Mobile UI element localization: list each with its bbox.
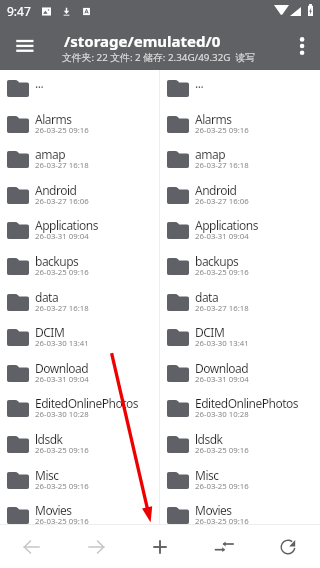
staticText: data	[35, 289, 59, 305]
button[interactable]: amap	[160, 141, 320, 177]
button[interactable]: Misc	[160, 462, 320, 498]
button[interactable]: amap	[0, 141, 159, 177]
button[interactable]: Download	[160, 355, 320, 391]
staticText: 26-03-31 09:04	[35, 231, 89, 242]
button[interactable]: DCIM	[0, 319, 159, 355]
staticText: 26-03-31 09:04	[195, 231, 249, 242]
staticText: Android	[35, 182, 77, 198]
staticText: ldsdk	[195, 431, 223, 447]
button[interactable]: More options	[286, 28, 320, 64]
staticText: 文件夹: 22 文件: 2 储存: 2.34G/49.32G 读写	[62, 51, 256, 64]
staticText: ...	[35, 75, 44, 91]
staticText: backups	[35, 253, 79, 269]
staticText: 26-03-30 13:41	[35, 338, 89, 349]
staticText: EditedOnlinePhotos	[195, 395, 299, 411]
staticText: /storage/emulated/0	[64, 31, 221, 51]
staticText: 26-03-30 10:28	[195, 409, 249, 420]
staticText: amap	[35, 146, 66, 162]
button[interactable]: Android	[160, 177, 320, 213]
button[interactable]: ...	[0, 70, 159, 106]
button[interactable]: Movies	[0, 497, 159, 524]
staticText: 26-03-25 09:16	[195, 445, 249, 456]
button[interactable]: Applications	[0, 212, 159, 248]
button[interactable]: ldsdk	[160, 426, 320, 462]
staticText: 26-03-25 09:16	[35, 125, 89, 136]
button[interactable]: data	[0, 284, 159, 320]
staticText: 26-03-25 09:16	[35, 481, 89, 492]
button[interactable]: Refresh	[264, 525, 312, 568]
staticText: 26-03-25 09:16	[35, 516, 89, 524]
staticText: Download	[195, 360, 249, 376]
staticText: Applications	[195, 217, 258, 233]
button[interactable]: Forward	[72, 525, 120, 568]
staticText: backups	[195, 253, 239, 269]
staticText: DCIM	[195, 324, 225, 340]
button[interactable]: EditedOnlinePhotos	[0, 390, 159, 426]
button[interactable]: Menu	[8, 28, 42, 64]
button[interactable]: Move	[200, 525, 248, 568]
staticText: Alarms	[195, 111, 232, 127]
staticText: Download	[35, 360, 89, 376]
button[interactable]: Android	[0, 177, 159, 213]
staticText: Movies	[195, 502, 232, 518]
button[interactable]: Download	[0, 355, 159, 391]
button[interactable]: Misc	[0, 462, 159, 498]
staticText: 26-03-27 16:06	[35, 196, 89, 207]
staticText: 26-03-30 10:28	[35, 409, 89, 420]
staticText: 26-03-25 09:16	[195, 267, 249, 278]
staticText: data	[195, 289, 219, 305]
staticText: 26-03-27 16:06	[195, 196, 249, 207]
button[interactable]: Movies	[160, 497, 320, 524]
staticText: Applications	[35, 217, 98, 233]
staticText: 26-03-27 16:18	[195, 160, 249, 171]
staticText: 26-03-27 16:18	[35, 303, 89, 314]
button[interactable]: backups	[160, 248, 320, 284]
button[interactable]: ldsdk	[0, 426, 159, 462]
staticText: 26-03-25 09:16	[195, 481, 249, 492]
staticText: 26-03-27 16:18	[195, 303, 249, 314]
staticText: 26-03-31 09:04	[195, 374, 249, 385]
button[interactable]: backups	[0, 248, 159, 284]
staticText: ldsdk	[35, 431, 63, 447]
button[interactable]: Applications	[160, 212, 320, 248]
button[interactable]: New folder	[136, 525, 184, 568]
staticText: 26-03-25 09:16	[35, 267, 89, 278]
staticText: Misc	[195, 467, 219, 483]
staticText: 26-03-25 09:16	[195, 125, 249, 136]
button[interactable]: Back	[8, 525, 56, 568]
staticText: Alarms	[35, 111, 72, 127]
staticText: Android	[195, 182, 237, 198]
button[interactable]: DCIM	[160, 319, 320, 355]
staticText: DCIM	[35, 324, 65, 340]
staticText: 9:47	[7, 3, 31, 19]
button[interactable]: data	[160, 284, 320, 320]
staticText: EditedOnlinePhotos	[35, 395, 139, 411]
button[interactable]: Alarms	[160, 106, 320, 142]
staticText: Misc	[35, 467, 59, 483]
button[interactable]: EditedOnlinePhotos	[160, 390, 320, 426]
staticText: 26-03-30 13:41	[195, 338, 249, 349]
staticText: 26-03-25 09:16	[195, 516, 249, 524]
staticText: 26-03-27 16:18	[35, 160, 89, 171]
staticText: Movies	[35, 502, 72, 518]
button[interactable]: ...	[160, 70, 320, 106]
staticText: 26-03-25 09:16	[35, 445, 89, 456]
staticText: 26-03-31 09:04	[35, 374, 89, 385]
staticText: amap	[195, 146, 226, 162]
staticText: ...	[195, 75, 204, 91]
button[interactable]: Alarms	[0, 106, 159, 142]
